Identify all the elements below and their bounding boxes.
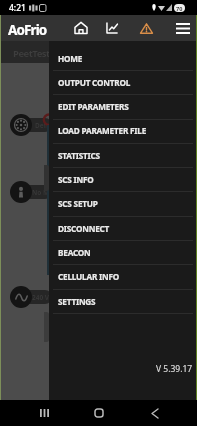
- staticText: STATISTICS: [58, 150, 100, 161]
- button[interactable]: OUTPUT CONTROL: [49, 70, 197, 94]
- button[interactable]: CELLULAR INFO: [49, 264, 197, 288]
- staticText: V 5.39.17: [156, 363, 193, 375]
- staticText: BEACON: [58, 247, 91, 258]
- button[interactable]: STATISTICS: [49, 143, 197, 167]
- staticText: OUTPUT CONTROL: [58, 77, 131, 88]
- button[interactable]: Menu: [170, 15, 196, 41]
- button[interactable]: 240 V: [10, 286, 32, 308]
- staticText: EDIT PARAMETERS: [58, 101, 129, 112]
- button[interactable]: Recents: [33, 402, 55, 424]
- button[interactable]: Home: [88, 402, 110, 424]
- button[interactable]: No M: [10, 181, 32, 203]
- staticText: AoFrio: [8, 21, 47, 39]
- button[interactable]: DISCONNECT: [49, 216, 197, 240]
- staticText: 4:21: [9, 2, 26, 14]
- button[interactable]: Home: [68, 15, 94, 41]
- button[interactable]: BEACON: [49, 240, 197, 264]
- button[interactable]: HOME: [49, 46, 197, 70]
- button[interactable]: EDIT PARAMETERS: [49, 94, 197, 118]
- button[interactable]: Alerts: [133, 15, 159, 41]
- button[interactable]: Defr: [10, 114, 32, 136]
- button[interactable]: SCS INFO: [49, 167, 197, 191]
- staticText: Defr: [35, 121, 50, 130]
- staticText: 70: [176, 5, 183, 12]
- button[interactable]: Back: [144, 402, 166, 424]
- staticText: SETTINGS: [58, 296, 96, 307]
- staticText: No M: [32, 188, 50, 197]
- staticText: SCS INFO: [58, 174, 94, 185]
- staticText: LOAD PARAMETER FILE: [58, 125, 147, 136]
- button[interactable]: Statistics: [99, 15, 125, 41]
- staticText: DISCONNECT: [58, 223, 110, 234]
- staticText: 240 V: [32, 293, 50, 302]
- staticText: HOME: [58, 53, 83, 64]
- button[interactable]: SETTINGS: [49, 289, 197, 313]
- button[interactable]: SCS SETUP: [49, 191, 197, 215]
- staticText: CELLULAR INFO: [58, 271, 120, 282]
- staticText: SCS SETUP: [58, 198, 98, 209]
- staticText: PeetTestBe: [13, 47, 61, 60]
- button[interactable]: LOAD PARAMETER FILE: [49, 118, 197, 142]
